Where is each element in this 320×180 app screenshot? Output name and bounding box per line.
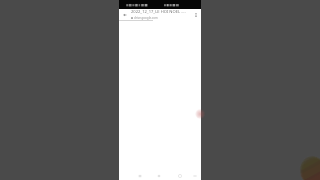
button[interactable]: Back — [119, 9, 131, 20]
button[interactable]: More options — [190, 9, 201, 20]
button[interactable]: Recents — [136, 172, 144, 180]
staticText: 2022_12_17_LE HOI NOEL -... — [131, 9, 186, 15]
button[interactable]: Home — [155, 172, 163, 180]
button[interactable]: Menu — [191, 172, 199, 180]
staticText: drive.google.com — [134, 16, 158, 20]
button[interactable]: Back — [176, 172, 184, 180]
